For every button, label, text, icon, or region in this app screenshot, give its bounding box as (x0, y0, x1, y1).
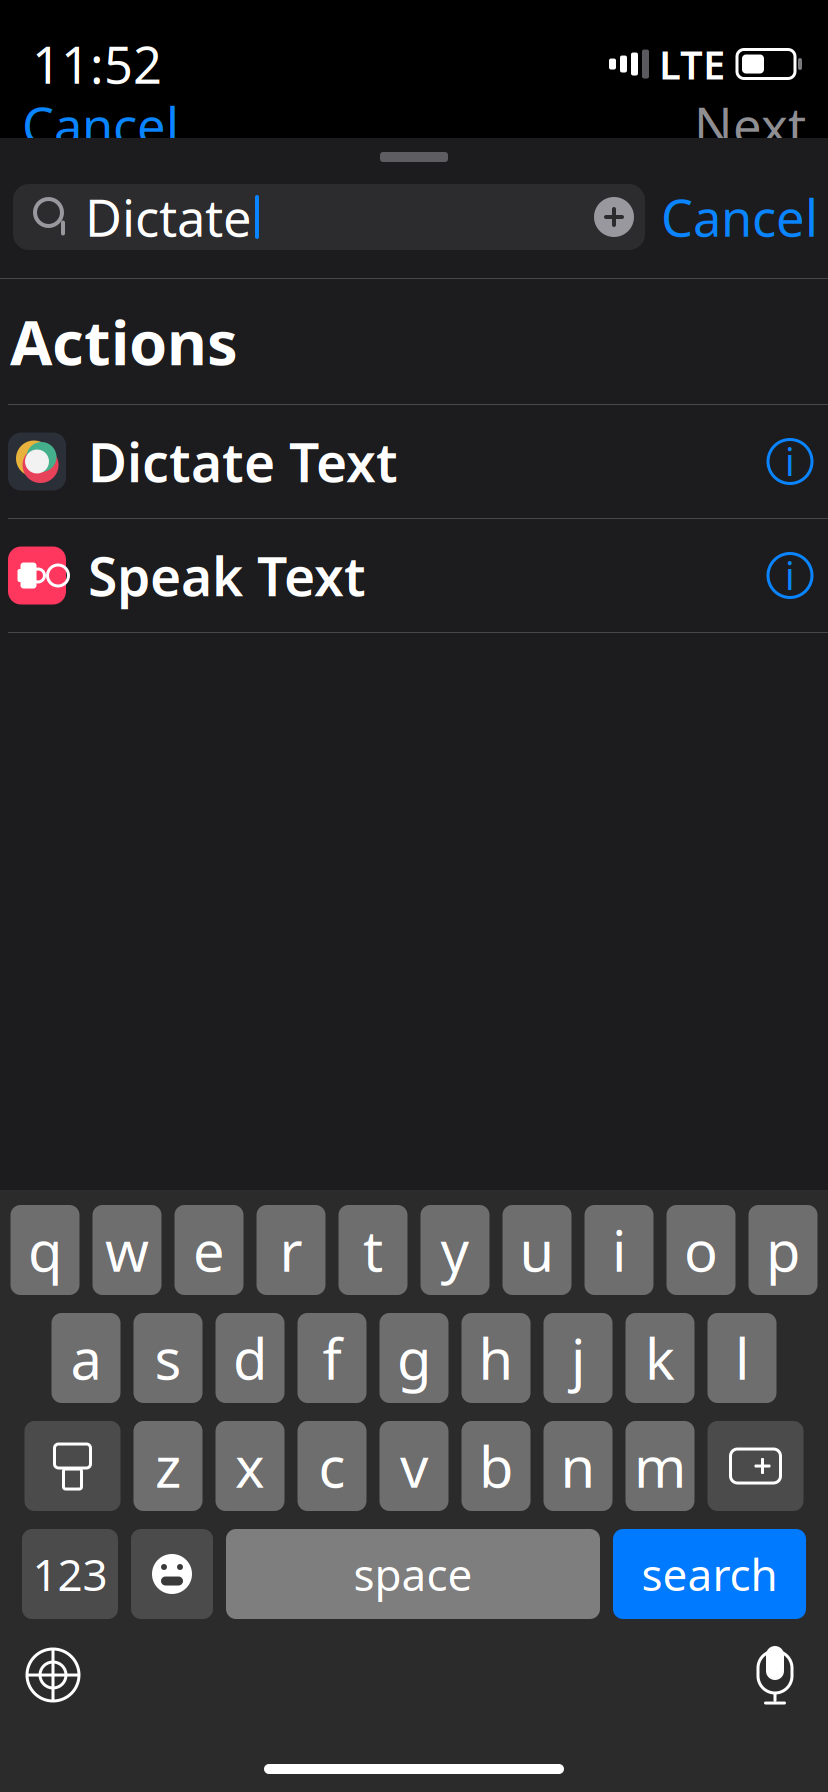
staticText: Next (694, 91, 806, 159)
button[interactable]: space (226, 1529, 600, 1619)
staticText: n (560, 1429, 595, 1503)
staticText: g (397, 1321, 431, 1395)
button[interactable]: q (10, 1205, 79, 1295)
staticText: space (353, 1545, 472, 1603)
staticText: e (193, 1213, 225, 1287)
staticText: 123 (32, 1545, 107, 1603)
button[interactable]: a (51, 1313, 120, 1403)
staticText: z (155, 1429, 181, 1503)
button[interactable]: d (215, 1313, 284, 1403)
button[interactable]: l (707, 1313, 776, 1403)
staticText: d (233, 1321, 267, 1395)
button[interactable]: m (625, 1421, 694, 1511)
staticText: Dictate (85, 183, 252, 251)
staticText: h (478, 1321, 513, 1395)
staticText: w (105, 1213, 149, 1287)
staticText: l (735, 1321, 749, 1395)
staticText: c (318, 1429, 345, 1503)
staticText: r (279, 1213, 302, 1287)
staticText: i (612, 1213, 626, 1287)
button[interactable]: i (584, 1205, 653, 1295)
button[interactable]: y (420, 1205, 489, 1295)
staticText: j (571, 1321, 585, 1395)
staticText: Speak Text (88, 540, 366, 611)
staticText: Dictate Text (88, 426, 398, 497)
button[interactable]: s (133, 1313, 202, 1403)
staticText: Actions (10, 301, 238, 382)
staticText: i (785, 437, 795, 486)
button[interactable]: u (502, 1205, 571, 1295)
button[interactable]: h (461, 1313, 530, 1403)
staticText: x (235, 1429, 265, 1503)
button[interactable]: j (543, 1313, 612, 1403)
button[interactable]: n (543, 1421, 612, 1511)
staticText: o (684, 1213, 718, 1287)
button[interactable]: Emoji (131, 1529, 213, 1619)
staticText: search (641, 1545, 777, 1603)
staticText: y (440, 1213, 469, 1287)
button[interactable]: t (338, 1205, 407, 1295)
staticText: s (154, 1321, 181, 1395)
button[interactable]: search (613, 1529, 806, 1619)
button[interactable]: Next keyboard (8, 1635, 98, 1715)
staticText: a (70, 1321, 101, 1395)
button[interactable]: c (297, 1421, 366, 1511)
button[interactable]: Cancel (645, 184, 828, 250)
button[interactable]: k (625, 1313, 694, 1403)
button[interactable]: Dictation (730, 1635, 820, 1715)
staticText: v (400, 1429, 428, 1503)
button[interactable]: Clear text (583, 184, 645, 250)
button[interactable]: w (92, 1205, 161, 1295)
staticText: p (766, 1213, 800, 1287)
button[interactable]: 123 (22, 1529, 118, 1619)
button[interactable]: Shift (24, 1421, 120, 1511)
staticText: u (519, 1213, 554, 1287)
button[interactable]: r (256, 1205, 325, 1295)
staticText: m (634, 1429, 686, 1503)
staticText: Cancel (22, 91, 179, 159)
button[interactable]: p (748, 1205, 817, 1295)
button[interactable]: o (666, 1205, 735, 1295)
staticText: LTE (659, 37, 725, 90)
staticText: Cancel (661, 183, 818, 251)
button[interactable]: f (297, 1313, 366, 1403)
staticText: f (322, 1321, 341, 1395)
button[interactable]: Speak Text (0, 519, 828, 632)
button[interactable]: Dictate Text (0, 405, 828, 518)
staticText: 11:52 (32, 30, 162, 98)
staticText: k (645, 1321, 675, 1395)
button[interactable]: x (215, 1421, 284, 1511)
button[interactable]: z (133, 1421, 202, 1511)
staticText: t (363, 1213, 383, 1287)
staticText: q (28, 1213, 62, 1287)
button[interactable]: b (461, 1421, 530, 1511)
button[interactable]: g (379, 1313, 448, 1403)
button[interactable]: v (379, 1421, 448, 1511)
staticText: b (479, 1429, 513, 1503)
staticText: i (785, 551, 795, 600)
button[interactable]: e (174, 1205, 243, 1295)
button[interactable]: Delete (707, 1421, 803, 1511)
